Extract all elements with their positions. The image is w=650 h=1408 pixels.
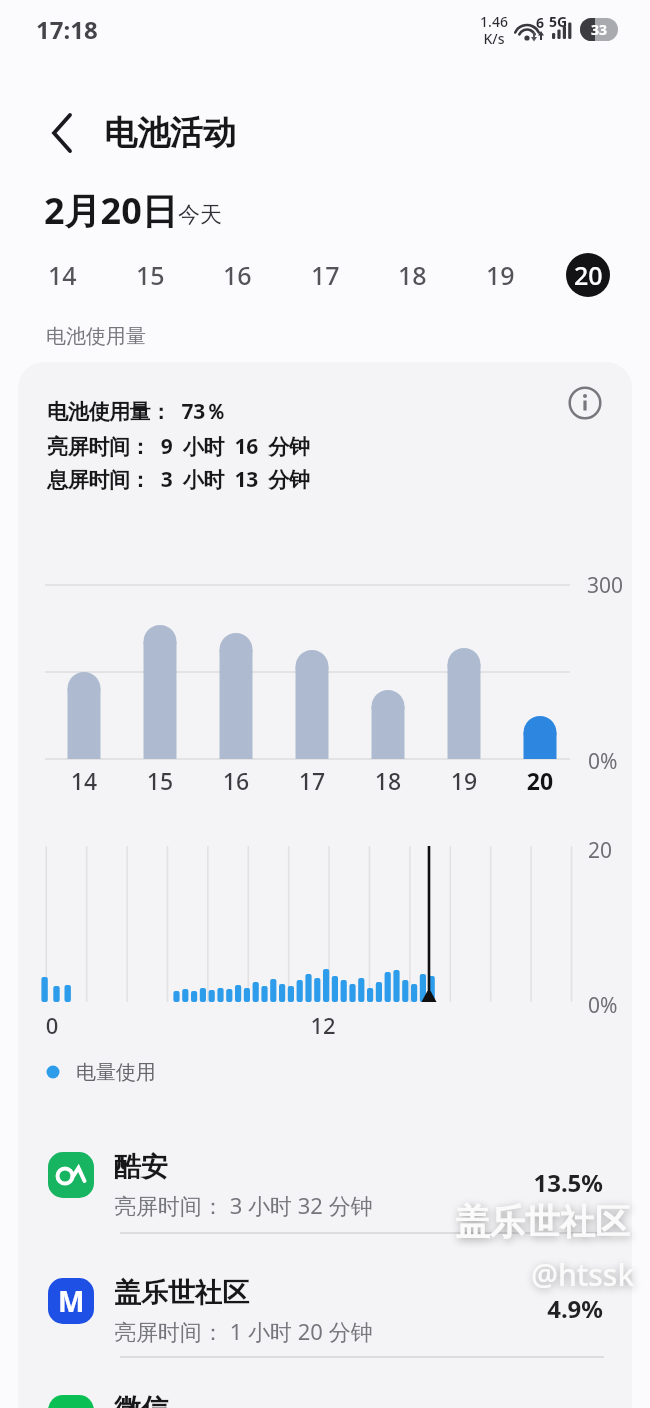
staticText: 今天 (178, 201, 222, 229)
button[interactable]: 17 (295, 253, 355, 297)
staticText: 18 (368, 765, 408, 796)
staticText: 20 (588, 836, 613, 865)
staticText: 20 (574, 258, 603, 292)
staticText: 亮屏时间： 1 小时 20 分钟 (114, 1316, 373, 1346)
staticText: 16 (216, 765, 256, 796)
staticText: 1.46 (477, 12, 511, 31)
button[interactable]: 14 (32, 253, 92, 297)
staticText: 电池使用量 (46, 324, 146, 349)
staticText: 微信 (114, 1392, 168, 1408)
button[interactable]: 18 (382, 253, 442, 297)
staticText: 电池活动 (104, 112, 236, 154)
staticText: 电量使用 (76, 1060, 156, 1085)
staticText: 12 (308, 1010, 338, 1040)
staticText: 14 (48, 258, 77, 292)
staticText: M (58, 1282, 85, 1320)
staticText: 息屏时间： 3 小时 13 分钟 (47, 465, 310, 494)
staticText: 19 (486, 258, 515, 292)
staticText: 盖乐世社区 (455, 1200, 630, 1244)
staticText: 0% (588, 747, 618, 776)
button[interactable]: 19 (470, 253, 530, 297)
staticText: 亮屏时间： 9 小时 16 分钟 (47, 432, 310, 461)
staticText: 19 (444, 765, 484, 796)
button[interactable] (561, 379, 609, 427)
staticText: 17 (292, 765, 332, 796)
button[interactable] (30, 1140, 620, 1230)
staticText: 0 (42, 1010, 62, 1040)
staticText: 14 (64, 765, 104, 796)
button[interactable] (30, 1266, 620, 1356)
button[interactable] (36, 105, 88, 161)
button[interactable] (30, 1390, 620, 1408)
staticText: K/s (477, 29, 511, 48)
staticText: 17:18 (36, 13, 98, 46)
staticText: 13.5% (483, 1166, 603, 1199)
staticText: 20 (520, 765, 560, 796)
staticText: 33 (591, 20, 608, 39)
staticText: 6 (536, 13, 545, 32)
staticText: 15 (136, 258, 165, 292)
staticText: 亮屏时间： 3 小时 32 分钟 (114, 1190, 373, 1220)
staticText: 酷安 (114, 1150, 168, 1184)
staticText: 17 (311, 258, 340, 292)
staticText: 5G (549, 12, 568, 31)
staticText: 16 (223, 258, 252, 292)
button[interactable]: 20 (566, 253, 610, 297)
staticText: 电池使用量： 73％ (47, 397, 226, 426)
staticText: 15 (140, 765, 180, 796)
staticText: 18 (398, 258, 427, 292)
button[interactable]: 16 (207, 253, 267, 297)
staticText: 0% (588, 991, 618, 1020)
button[interactable]: 15 (120, 253, 180, 297)
staticText: 盖乐世社区 (114, 1276, 249, 1310)
staticText: 4.9% (483, 1292, 603, 1325)
staticText: 2月20日 (44, 186, 178, 235)
staticText: @htssk (531, 1254, 635, 1295)
staticText: 300 (587, 571, 624, 600)
